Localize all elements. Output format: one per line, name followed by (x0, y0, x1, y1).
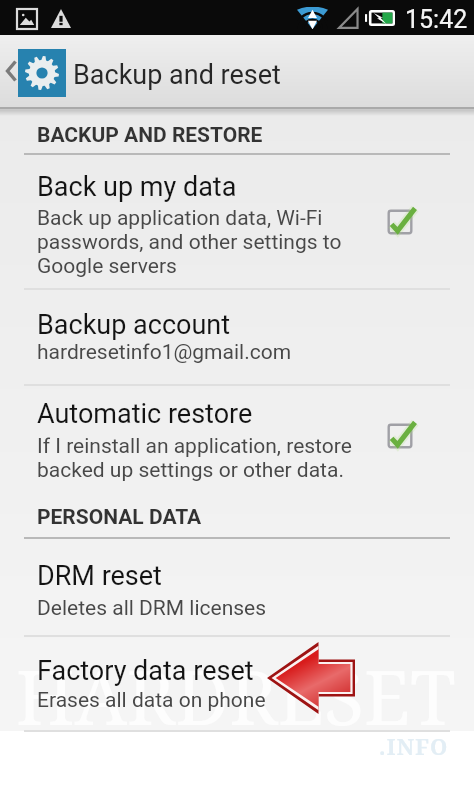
button[interactable] (0, 289, 474, 384)
staticText: Back up my data (37, 171, 237, 203)
button[interactable] (0, 154, 474, 288)
staticText: Erases all data on phone (37, 688, 266, 713)
staticText: 15:42 (405, 5, 468, 34)
staticText: HARDRESET (16, 646, 456, 747)
staticText: Automatic restore (37, 398, 253, 430)
staticText: .INFO (379, 731, 449, 761)
staticText: Backup account (37, 309, 231, 341)
staticText: If I reinstall an application, restore b… (37, 434, 352, 482)
staticText: DRM reset (37, 560, 162, 592)
staticText: Backup and reset (73, 59, 281, 91)
staticText: Deletes all DRM licenses (37, 596, 267, 621)
staticText: Back up application data, Wi-Fi password… (37, 206, 342, 278)
button[interactable]: Checkbox, checked (374, 410, 426, 462)
button[interactable] (0, 636, 474, 730)
button[interactable] (0, 538, 474, 635)
button[interactable]: Navigate up (0, 35, 70, 106)
staticText: BACKUP AND RESTORE (37, 123, 263, 148)
button[interactable]: Checkbox, checked (374, 196, 426, 248)
staticText: PERSONAL DATA (37, 505, 202, 530)
button[interactable] (0, 385, 474, 537)
staticText: hardresetinfo1@gmail.com (37, 340, 292, 365)
staticText: Factory data reset (37, 655, 254, 687)
